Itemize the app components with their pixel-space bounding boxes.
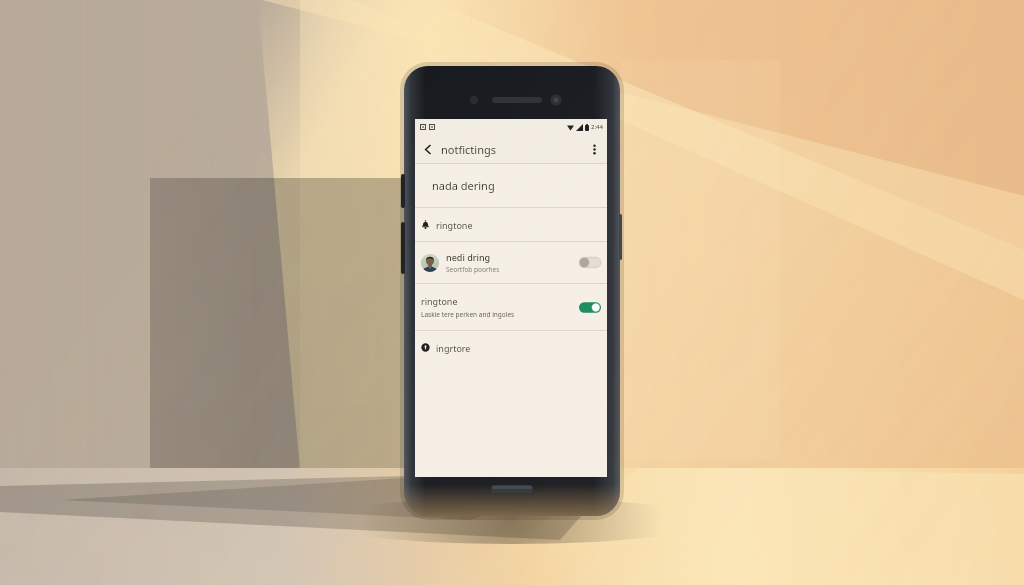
staticText: Seortfob poorhes (446, 265, 500, 274)
button[interactable]: nedi dring (415, 242, 607, 283)
button[interactable]: On (579, 301, 601, 314)
staticText: ringtone (436, 219, 473, 231)
staticText: Laskie tere perken and ingoles (421, 310, 515, 319)
button[interactable]: ringtone (415, 284, 607, 330)
button[interactable]: nada dering (415, 164, 607, 207)
staticText: notfictings (441, 142, 496, 157)
button[interactable]: Off (579, 256, 601, 269)
staticText: nada dering (432, 178, 495, 193)
button[interactable]: ringtone (415, 208, 607, 241)
staticText: nedi dring (446, 251, 491, 263)
button[interactable]: More options (581, 136, 607, 162)
button[interactable]: ingrtore (415, 331, 607, 364)
staticText: ingrtore (436, 342, 471, 354)
button[interactable]: Back (415, 136, 441, 162)
staticText: 2:44 (591, 123, 603, 131)
staticText: ringtone (421, 295, 458, 307)
